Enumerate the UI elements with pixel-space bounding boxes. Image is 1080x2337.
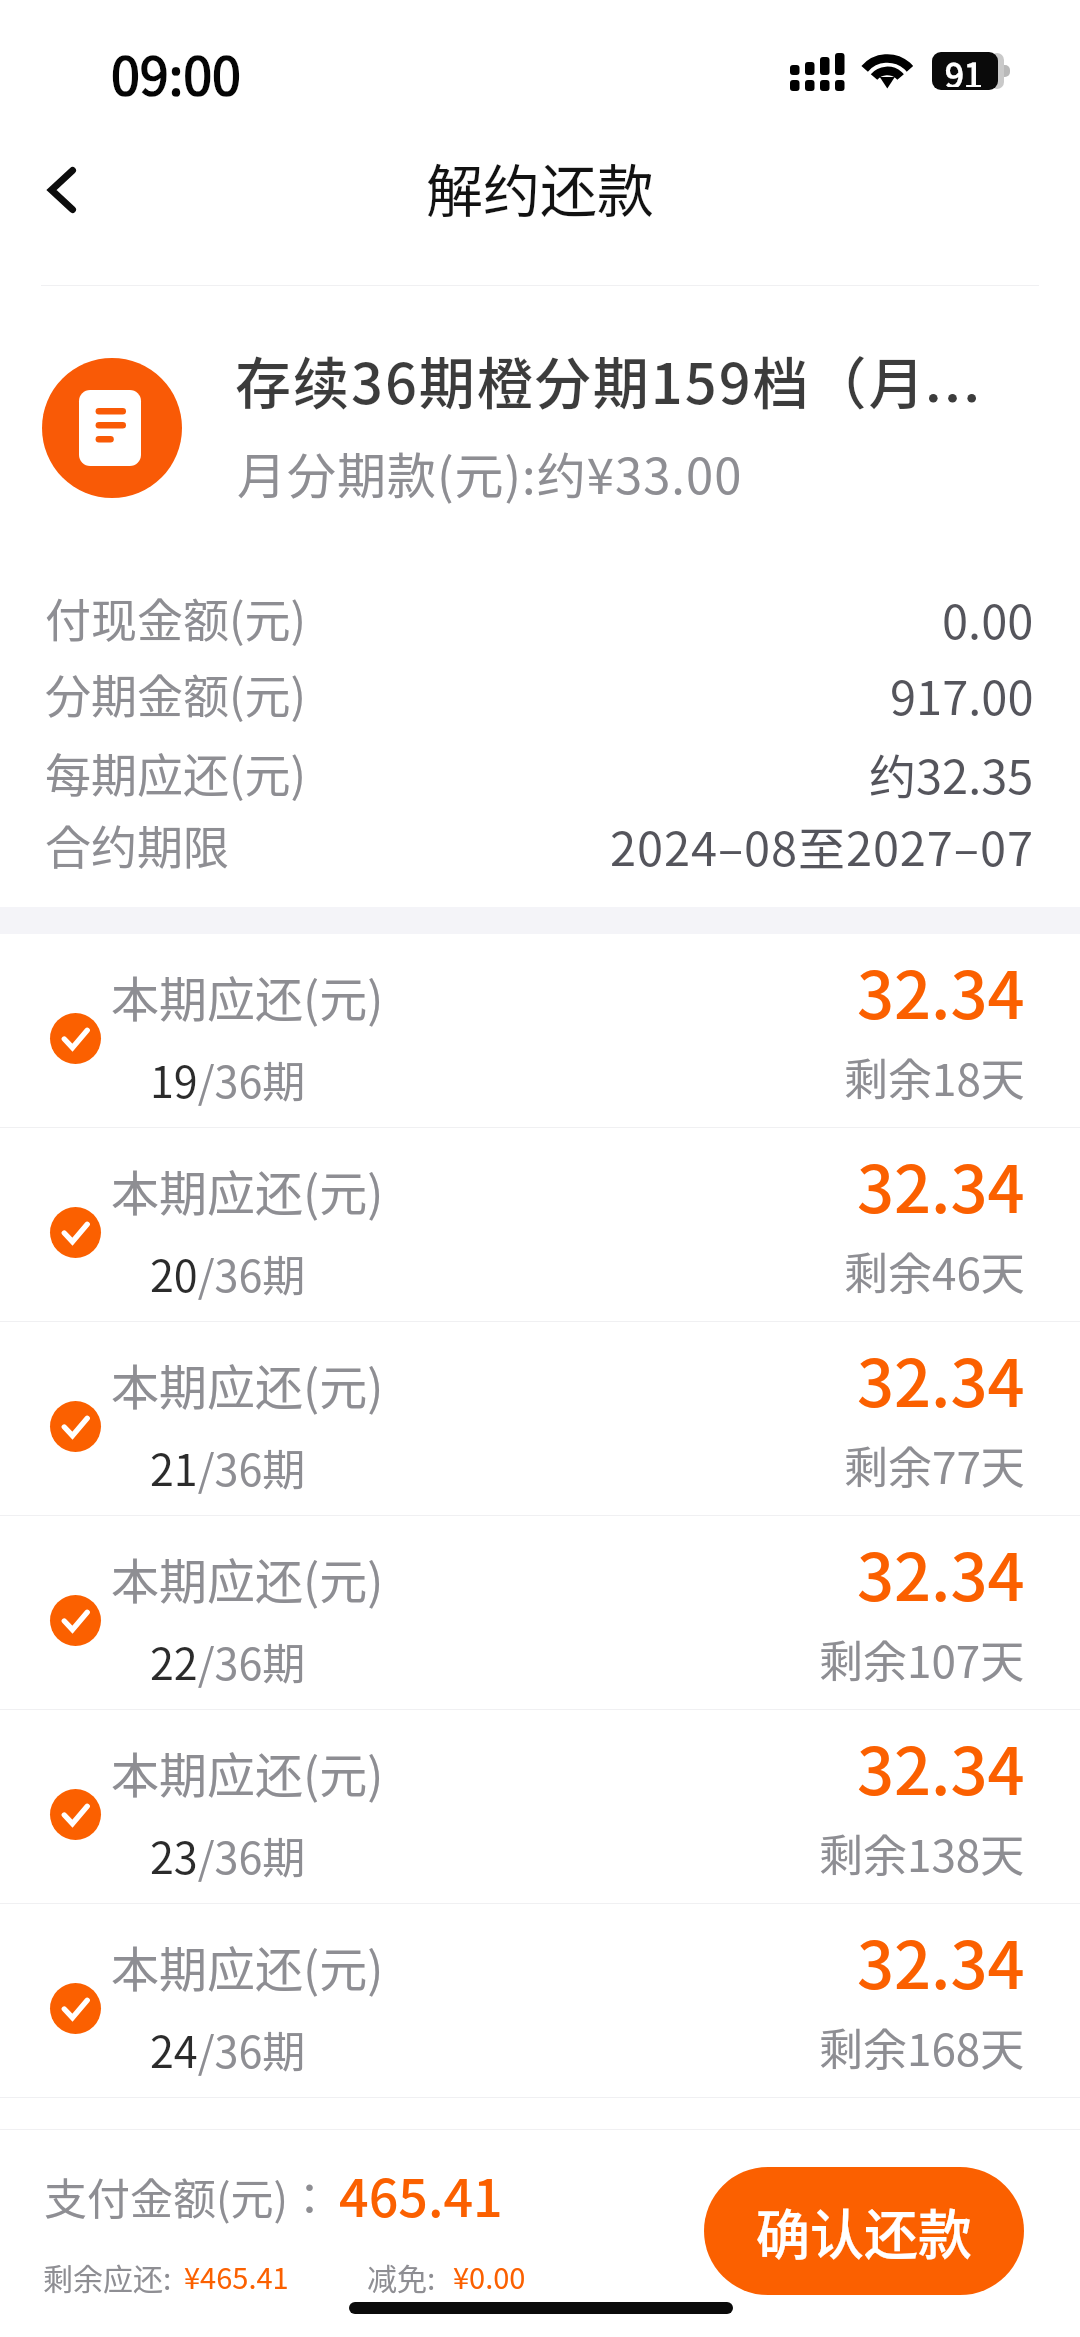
staticText: ¥0.00 <box>453 2255 526 2297</box>
staticText: 91 <box>945 49 983 87</box>
staticText: 剩余46天 <box>844 1239 1025 1303</box>
staticText: 32.34 <box>857 1526 1025 1620</box>
staticText: 19/36期 <box>150 1048 306 1110</box>
staticText: 每期应还(元) <box>45 739 307 806</box>
staticText: ¥465.41 <box>184 2255 289 2297</box>
staticText: 本期应还(元) <box>111 961 384 1031</box>
staticText: 2024–08至2027–07 <box>610 811 1034 879</box>
staticText: 支付金额(元)： <box>44 2165 332 2227</box>
staticText: 本期应还(元) <box>111 1349 384 1419</box>
staticText: 本期应还(元) <box>111 1737 384 1807</box>
staticText: 约32.35 <box>869 739 1034 807</box>
staticText: 32.34 <box>857 944 1025 1038</box>
staticText: 22/36期 <box>150 1630 306 1692</box>
button[interactable]: 确认还款 <box>704 2167 1024 2295</box>
button[interactable]: 本期应还(元) <box>0 1516 1080 1709</box>
staticText: 0.00 <box>942 584 1034 652</box>
staticText: 本期应还(元) <box>111 1931 384 2001</box>
staticText: 月分期款(元):约¥33.00 <box>237 437 743 508</box>
button[interactable]: 本期应还(元) <box>0 1710 1080 1903</box>
staticText: 剩余107天 <box>819 1627 1025 1691</box>
staticText: 确认还款 <box>756 2192 972 2270</box>
staticText: 减免: <box>367 2255 436 2298</box>
button[interactable]: 本期应还(元) <box>0 1128 1080 1321</box>
staticText: 32.34 <box>857 1720 1025 1814</box>
staticText: 存续36期橙分期159档（月 <box>235 339 927 420</box>
staticText: 付现金额(元) <box>45 584 307 651</box>
staticText: 32.34 <box>857 1914 1025 2008</box>
staticText: 剩余应还: <box>43 2255 172 2298</box>
staticText: 465.41 <box>339 2157 503 2232</box>
staticText: 917.00 <box>890 660 1034 728</box>
staticText: 剩余77天 <box>844 1433 1025 1497</box>
button[interactable]: Back <box>10 112 114 268</box>
staticText: 剩余138天 <box>819 1821 1025 1885</box>
button[interactable]: 本期应还(元) <box>0 1322 1080 1515</box>
staticText: 21/36期 <box>150 1436 306 1498</box>
staticText: 本期应还(元) <box>111 1543 384 1613</box>
staticText: 剩余18天 <box>844 1045 1025 1109</box>
staticText: 32.34 <box>857 1332 1025 1426</box>
staticText: 09:00 <box>111 35 241 110</box>
staticText: 解约还款 <box>426 146 654 229</box>
button[interactable]: 本期应还(元) <box>0 1904 1080 2097</box>
staticText: 32.34 <box>857 1138 1025 1232</box>
staticText: 分期金额(元) <box>45 660 307 727</box>
button[interactable]: 本期应还(元) <box>0 934 1080 1127</box>
staticText: 23/36期 <box>150 1824 306 1886</box>
staticText: 本期应还(元) <box>111 1155 384 1225</box>
staticText: 合约期限 <box>45 811 229 878</box>
staticText: 20/36期 <box>150 1242 306 1304</box>
staticText: 剩余168天 <box>819 2015 1025 2079</box>
staticText: 24/36期 <box>150 2018 306 2080</box>
